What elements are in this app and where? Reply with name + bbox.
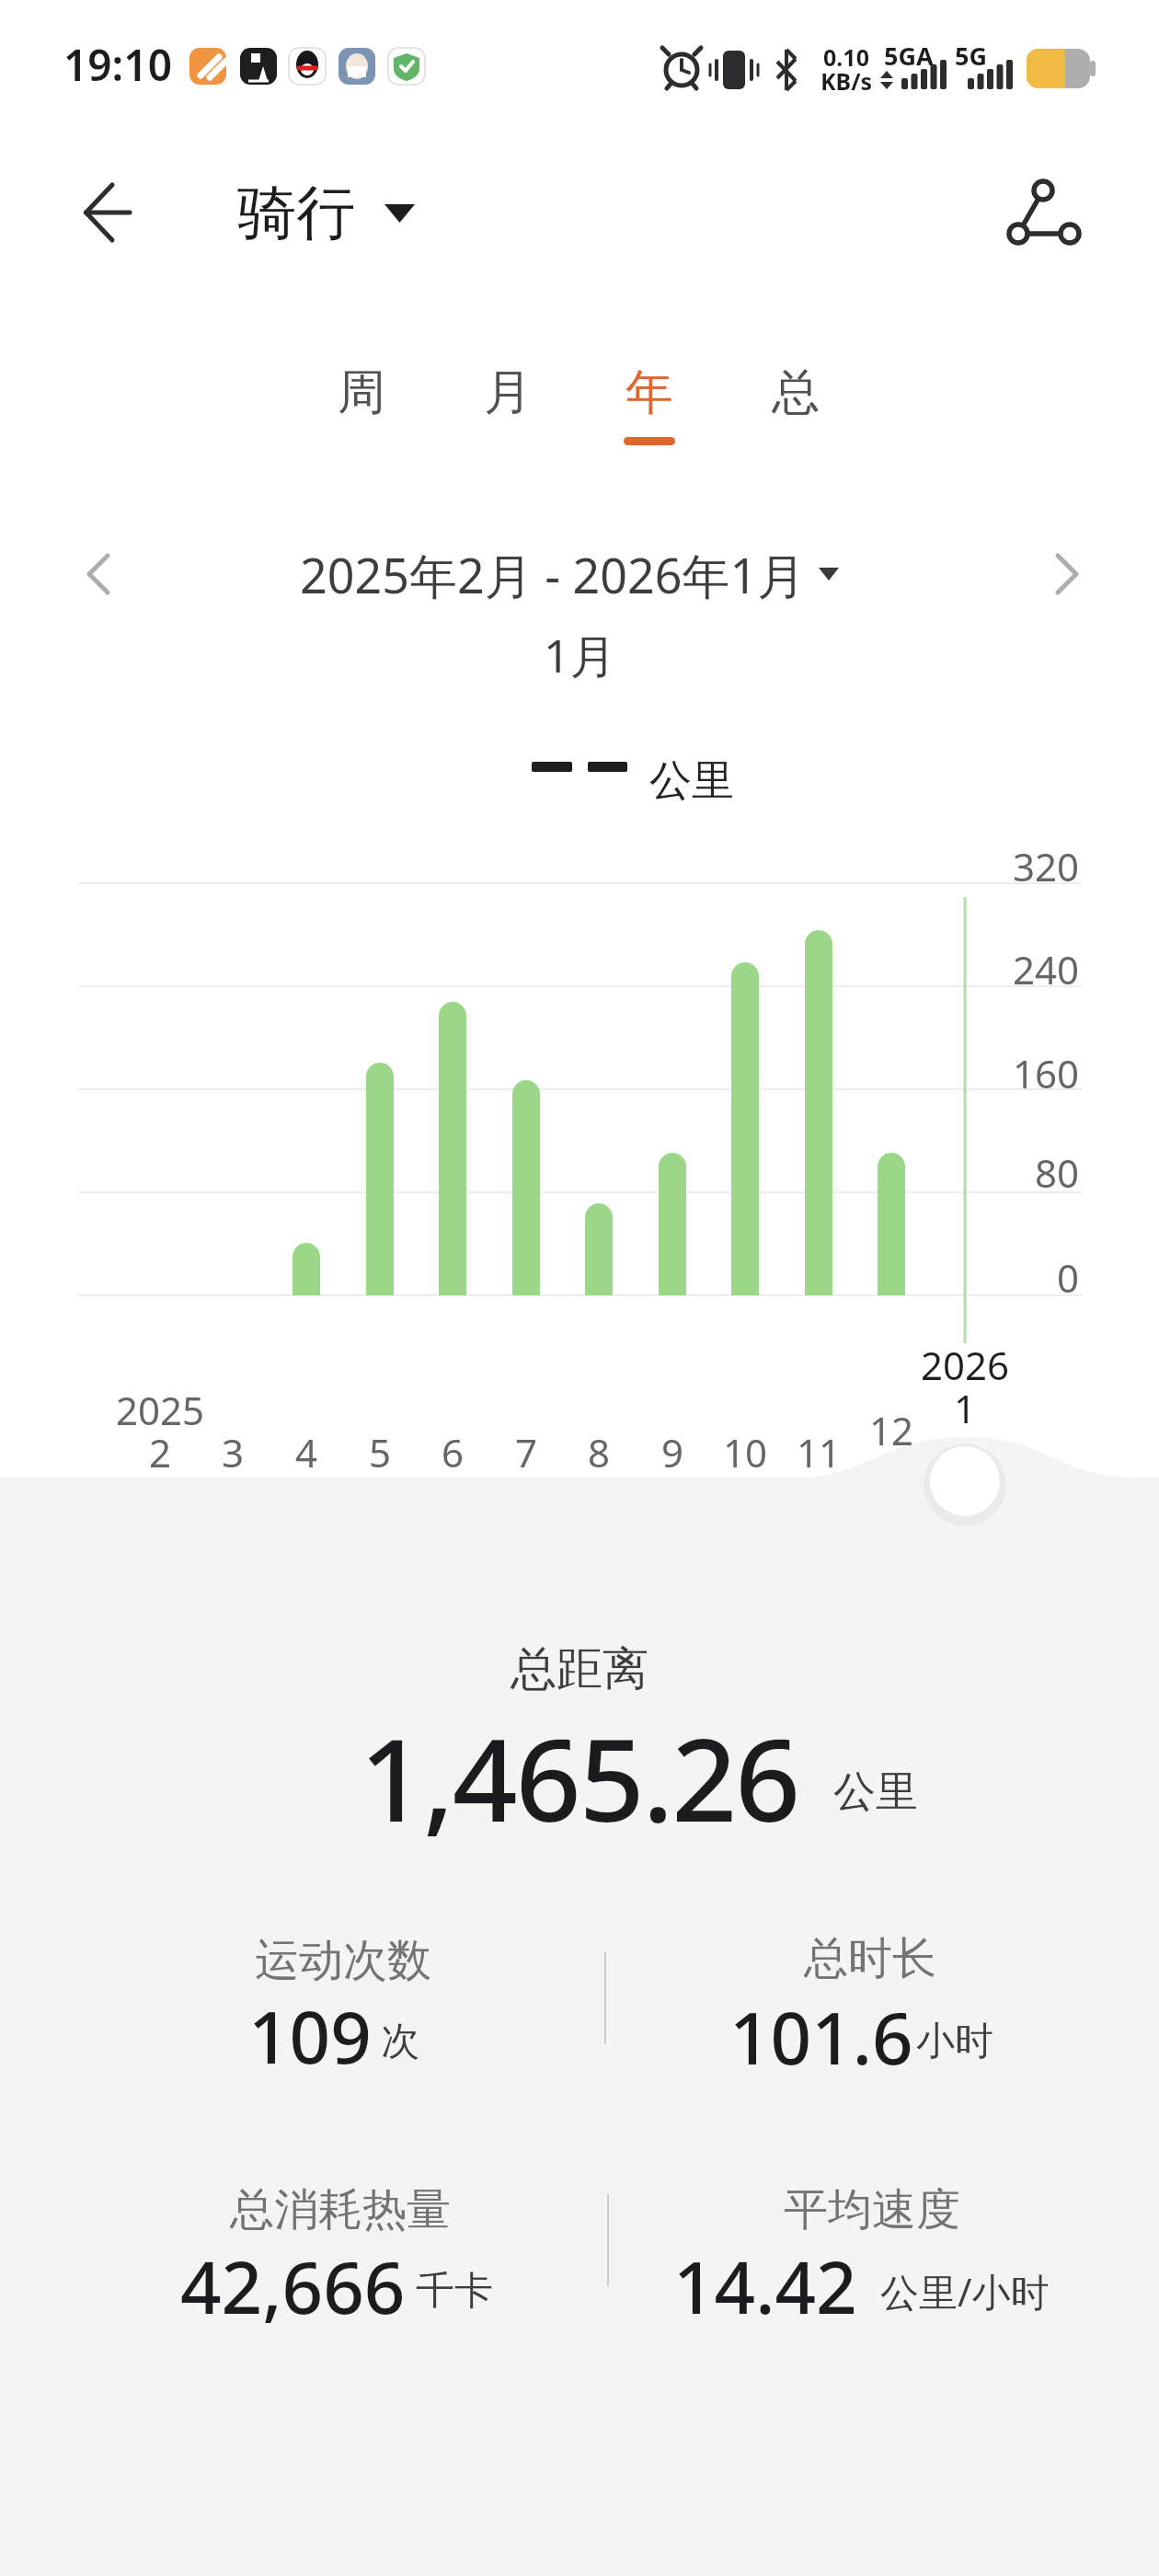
staticText: 9 — [661, 1426, 684, 1478]
staticText: 109 — [248, 1987, 372, 2085]
button[interactable] — [55, 170, 147, 258]
staticText: 2 — [149, 1426, 172, 1478]
staticText: 11 — [797, 1426, 842, 1478]
staticText: 2025 — [116, 1384, 205, 1436]
staticText: 42,666 — [180, 2237, 406, 2335]
staticText: 10 — [723, 1426, 768, 1478]
staticText: 总消耗热量 — [230, 2182, 451, 2237]
staticText: 周 — [338, 362, 385, 423]
staticText: 0.10 — [823, 41, 869, 73]
staticText: 12 — [869, 1404, 914, 1456]
button[interactable]: 总 — [745, 349, 846, 454]
staticText: 1,465.26 — [360, 1699, 799, 1855]
staticText: 总距离 — [511, 1640, 648, 1698]
staticText: 总时长 — [804, 1931, 936, 1986]
button[interactable] — [989, 161, 1090, 258]
button[interactable] — [62, 537, 135, 611]
staticText: 19:10 — [63, 36, 172, 94]
staticText: 运动次数 — [255, 1933, 431, 1988]
button[interactable] — [216, 170, 428, 258]
staticText: 160 — [1013, 1047, 1080, 1099]
staticText: 公里 — [649, 754, 734, 808]
button[interactable]: 月 — [457, 349, 558, 454]
staticText: 8 — [588, 1426, 611, 1478]
staticText: 1 — [954, 1382, 977, 1434]
staticText: 总 — [772, 362, 820, 423]
staticText: 千卡 — [416, 2267, 493, 2316]
staticText: 1月 — [544, 624, 616, 686]
staticText: 公里/小时 — [880, 2265, 1050, 2317]
staticText: 2026 — [921, 1339, 1010, 1391]
staticText: 6 — [442, 1426, 465, 1478]
staticText: 5GA — [884, 39, 934, 73]
staticText: 年 — [625, 362, 673, 423]
staticText: 骑行 — [237, 176, 355, 250]
staticText: 2025年2月 - 2026年1月 — [300, 542, 806, 607]
staticText: KB/s — [820, 65, 873, 97]
staticText: 80 — [1035, 1146, 1080, 1199]
button[interactable] — [924, 1441, 1005, 1522]
staticText: 公里 — [833, 1765, 918, 1819]
button[interactable] — [1030, 537, 1104, 611]
staticText: 小时 — [916, 2018, 993, 2066]
staticText: 平均速度 — [784, 2182, 960, 2237]
staticText: 5G — [955, 39, 987, 73]
staticText: 7 — [515, 1426, 538, 1478]
button[interactable] — [290, 534, 855, 615]
staticText: 次 — [381, 2018, 419, 2066]
staticText: 月 — [484, 362, 532, 423]
staticText: 14.42 — [673, 2237, 857, 2335]
button[interactable]: 周 — [311, 349, 412, 454]
staticText: 240 — [1013, 943, 1080, 995]
staticText: 0 — [1057, 1251, 1080, 1304]
staticText: 320 — [1013, 840, 1080, 892]
staticText: 4 — [295, 1426, 318, 1478]
button[interactable]: 年 — [599, 349, 700, 454]
staticText: 5 — [369, 1426, 392, 1478]
staticText: 101.6 — [729, 1988, 913, 2086]
staticText: 3 — [222, 1426, 245, 1478]
